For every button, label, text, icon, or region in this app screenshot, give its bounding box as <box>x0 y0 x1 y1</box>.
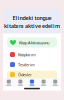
button[interactable]: Tab 5 <box>49 79 61 87</box>
button[interactable]: Tab 1 <box>3 79 15 87</box>
button[interactable]: Kitap Aktivasyonu <box>7 38 57 48</box>
staticText: kitabını aktive edelim <box>4 22 60 30</box>
staticText: Elindeki tongue <box>12 14 51 21</box>
button[interactable]: Tab 4 <box>38 79 49 87</box>
button[interactable]: Testlerim <box>7 61 57 69</box>
staticText: Testlerim <box>18 62 35 67</box>
button[interactable]: Kitaplarım <box>7 51 57 59</box>
staticText: Ödevler <box>18 72 32 77</box>
staticText: Kitap Aktivasyonu <box>19 40 49 45</box>
button[interactable]: Ödevler <box>7 71 57 79</box>
staticText: Kitaplarım <box>18 52 36 57</box>
button[interactable]: Tab 2 <box>15 79 26 87</box>
button[interactable]: Tab 3 <box>26 79 38 87</box>
